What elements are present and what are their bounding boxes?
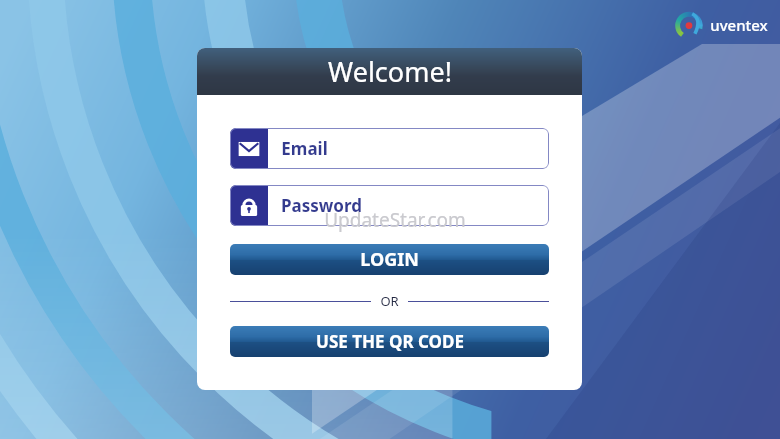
staticText: Password <box>281 194 362 217</box>
staticText: USE THE QR CODE <box>316 330 464 353</box>
staticText: uventex <box>710 15 768 35</box>
button[interactable]: USE THE QR CODE <box>230 326 549 357</box>
staticText: UpdateStar.com <box>324 207 466 233</box>
button[interactable]: Password <box>230 185 549 226</box>
button[interactable]: Email <box>230 128 549 169</box>
staticText: OR <box>380 292 399 310</box>
button[interactable]: uventex logo <box>676 11 768 38</box>
staticText: LOGIN <box>360 247 419 272</box>
button[interactable]: LOGIN <box>230 244 549 275</box>
staticText: Welcome! <box>328 53 452 90</box>
staticText: Email <box>281 137 328 160</box>
